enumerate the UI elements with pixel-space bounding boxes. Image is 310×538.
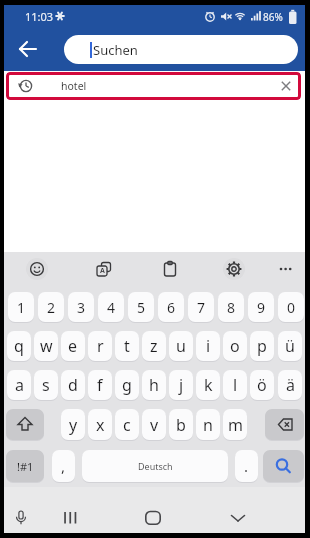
button[interactable] — [26, 258, 48, 280]
staticText: 11:03 — [25, 9, 54, 24]
staticText: Suchen — [93, 41, 138, 59]
button[interactable]: q — [7, 331, 31, 361]
button[interactable]: e — [61, 331, 85, 361]
button[interactable]: Deutsch — [82, 450, 228, 482]
staticText: A — [100, 266, 105, 276]
staticText: q — [14, 335, 24, 357]
staticText: k — [204, 374, 213, 396]
button[interactable] — [265, 409, 304, 440]
staticText: h — [149, 374, 159, 396]
staticText: 86% — [263, 10, 283, 24]
button[interactable]: 3 — [68, 292, 94, 322]
button[interactable]: v — [142, 409, 166, 440]
button[interactable]: 7 — [188, 292, 214, 322]
staticText: v — [150, 414, 159, 436]
staticText: d — [68, 374, 78, 396]
staticText: b — [176, 414, 186, 436]
staticText: n — [203, 414, 213, 436]
staticText: l — [233, 374, 238, 396]
button[interactable] — [6, 409, 44, 440]
button[interactable]: c — [115, 409, 139, 440]
staticText: m — [228, 414, 243, 436]
button[interactable]: Suchen — [64, 35, 298, 64]
staticText: p — [257, 335, 267, 357]
button[interactable]: 4 — [98, 292, 124, 322]
button[interactable]: 2 — [38, 292, 64, 322]
staticText: a — [15, 374, 24, 396]
staticText: ö — [257, 374, 267, 396]
button[interactable]: y — [61, 409, 85, 440]
button[interactable]: i — [196, 331, 220, 361]
staticText: . — [244, 456, 249, 476]
button[interactable]: , — [52, 450, 75, 482]
button[interactable]: . — [235, 450, 258, 482]
button[interactable]: x — [88, 409, 112, 440]
button[interactable]: s — [34, 370, 58, 400]
button[interactable]: d — [61, 370, 85, 400]
button[interactable]: l — [223, 370, 247, 400]
button[interactable] — [229, 508, 247, 528]
staticText: 4 — [107, 298, 116, 317]
staticText: j — [179, 374, 184, 396]
button[interactable] — [275, 258, 297, 280]
staticText: u — [176, 335, 186, 357]
staticText: r — [97, 335, 104, 357]
staticText: g — [122, 374, 132, 396]
staticText: 8 — [227, 298, 236, 317]
staticText: i — [206, 335, 211, 357]
button[interactable] — [14, 35, 42, 63]
button[interactable]: k — [196, 370, 220, 400]
button[interactable]: ö — [250, 370, 274, 400]
button[interactable]: t — [115, 331, 139, 361]
button[interactable]: z — [142, 331, 166, 361]
button[interactable]: p — [250, 331, 274, 361]
button[interactable]: 9 — [248, 292, 274, 322]
button[interactable]: 6 — [158, 292, 184, 322]
button[interactable] — [159, 258, 181, 280]
staticText: t — [124, 335, 130, 357]
button[interactable]: b — [169, 409, 193, 440]
staticText: Deutsch — [138, 460, 173, 472]
button[interactable]: 8 — [218, 292, 244, 322]
button[interactable]: !#1 — [6, 450, 44, 482]
button[interactable]: A — [93, 258, 115, 280]
button[interactable]: u — [169, 331, 193, 361]
button[interactable] — [263, 450, 304, 482]
button[interactable]: g — [115, 370, 139, 400]
button[interactable] — [61, 508, 79, 528]
staticText: 9 — [257, 298, 266, 317]
staticText: y — [69, 414, 78, 436]
staticText: e — [68, 335, 78, 357]
staticText: s — [42, 374, 50, 396]
staticText: z — [150, 335, 158, 357]
button[interactable]: m — [223, 409, 247, 440]
button[interactable]: w — [34, 331, 58, 361]
staticText: , — [61, 456, 66, 476]
button[interactable]: f — [88, 370, 112, 400]
button[interactable]: ä — [278, 370, 302, 400]
button[interactable]: j — [169, 370, 193, 400]
button[interactable]: r — [88, 331, 112, 361]
staticText: w — [40, 335, 53, 357]
button[interactable] — [144, 508, 162, 528]
button[interactable]: hotel — [6, 72, 301, 100]
button[interactable] — [223, 258, 245, 280]
staticText: c — [123, 414, 131, 436]
staticText: 5 — [137, 298, 146, 317]
staticText: hotel — [61, 79, 87, 93]
button[interactable]: n — [196, 409, 220, 440]
button[interactable]: 5 — [128, 292, 154, 322]
button[interactable]: 0 — [278, 292, 304, 322]
button[interactable]: h — [142, 370, 166, 400]
staticText: 7 — [197, 298, 206, 317]
button[interactable]: o — [223, 331, 247, 361]
staticText: 2 — [47, 298, 56, 317]
button[interactable]: 1 — [8, 292, 34, 322]
button[interactable]: ü — [278, 331, 302, 361]
button[interactable] — [12, 508, 30, 528]
staticText: 0 — [287, 298, 296, 317]
button[interactable]: a — [7, 370, 31, 400]
staticText: ä — [286, 374, 295, 396]
staticText: 3 — [77, 298, 86, 317]
staticText: 1 — [17, 298, 26, 317]
